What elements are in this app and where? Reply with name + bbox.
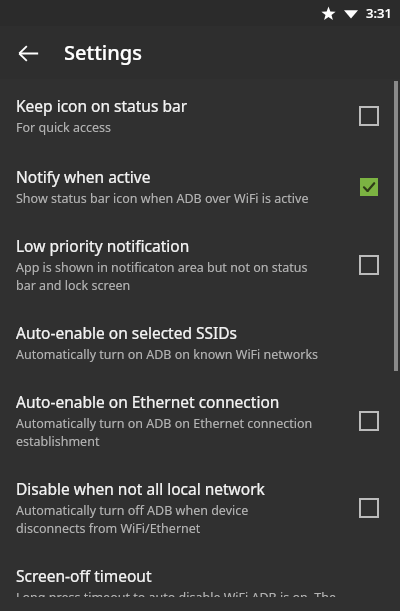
button[interactable]: Toggle Low priority notification: [354, 250, 384, 280]
staticText: Screen-off timeout: [16, 565, 152, 586]
button[interactable]: Notify when active: [0, 152, 400, 221]
staticText: Auto-enable on Ethernet connection: [16, 391, 280, 412]
button[interactable]: Toggle Keep icon on status bar: [354, 101, 384, 131]
staticText: disconnects from WiFi/Ethernet: [16, 520, 201, 537]
staticText: Disable when not all local network: [16, 478, 265, 499]
staticText: Automatically turn on ADB on known WiFi …: [16, 346, 319, 363]
button[interactable]: Toggle Notify when active: [354, 172, 384, 202]
staticText: Show status bar icon when ADB over WiFi …: [16, 190, 309, 207]
staticText: For quick access: [16, 119, 112, 136]
button[interactable]: Low priority notification: [0, 221, 400, 308]
button[interactable]: Screen-off timeout: [0, 551, 400, 611]
staticText: bar and lock screen: [16, 277, 131, 294]
button[interactable]: Keep icon on status bar: [0, 79, 400, 152]
button[interactable]: Toggle Auto-enable on Ethernet connectio…: [354, 406, 384, 436]
staticText: Automatically turn off ADB when device: [16, 502, 249, 519]
staticText: Notify when active: [16, 166, 151, 187]
staticText: Settings: [64, 39, 142, 66]
staticText: Automatically turn on ADB on Ethernet co…: [16, 415, 313, 432]
staticText: Low priority notification: [16, 235, 190, 256]
button[interactable]: Auto-enable on selected SSIDs: [0, 308, 400, 377]
staticText: Auto-enable on selected SSIDs: [16, 322, 238, 343]
button[interactable]: Back: [10, 35, 46, 71]
staticText: Keep icon on status bar: [16, 95, 188, 116]
button[interactable]: Toggle Disable when not all local networ…: [354, 493, 384, 523]
staticText: App is shown in notificaton area but not…: [16, 259, 308, 276]
button[interactable]: Auto-enable on Ethernet connection: [0, 377, 400, 464]
button[interactable]: Disable when not all local network: [0, 464, 400, 551]
staticText: establishment: [16, 433, 100, 450]
staticText: Long press timeout to auto disable WiFi …: [16, 589, 337, 597]
staticText: 3:31: [366, 4, 392, 22]
